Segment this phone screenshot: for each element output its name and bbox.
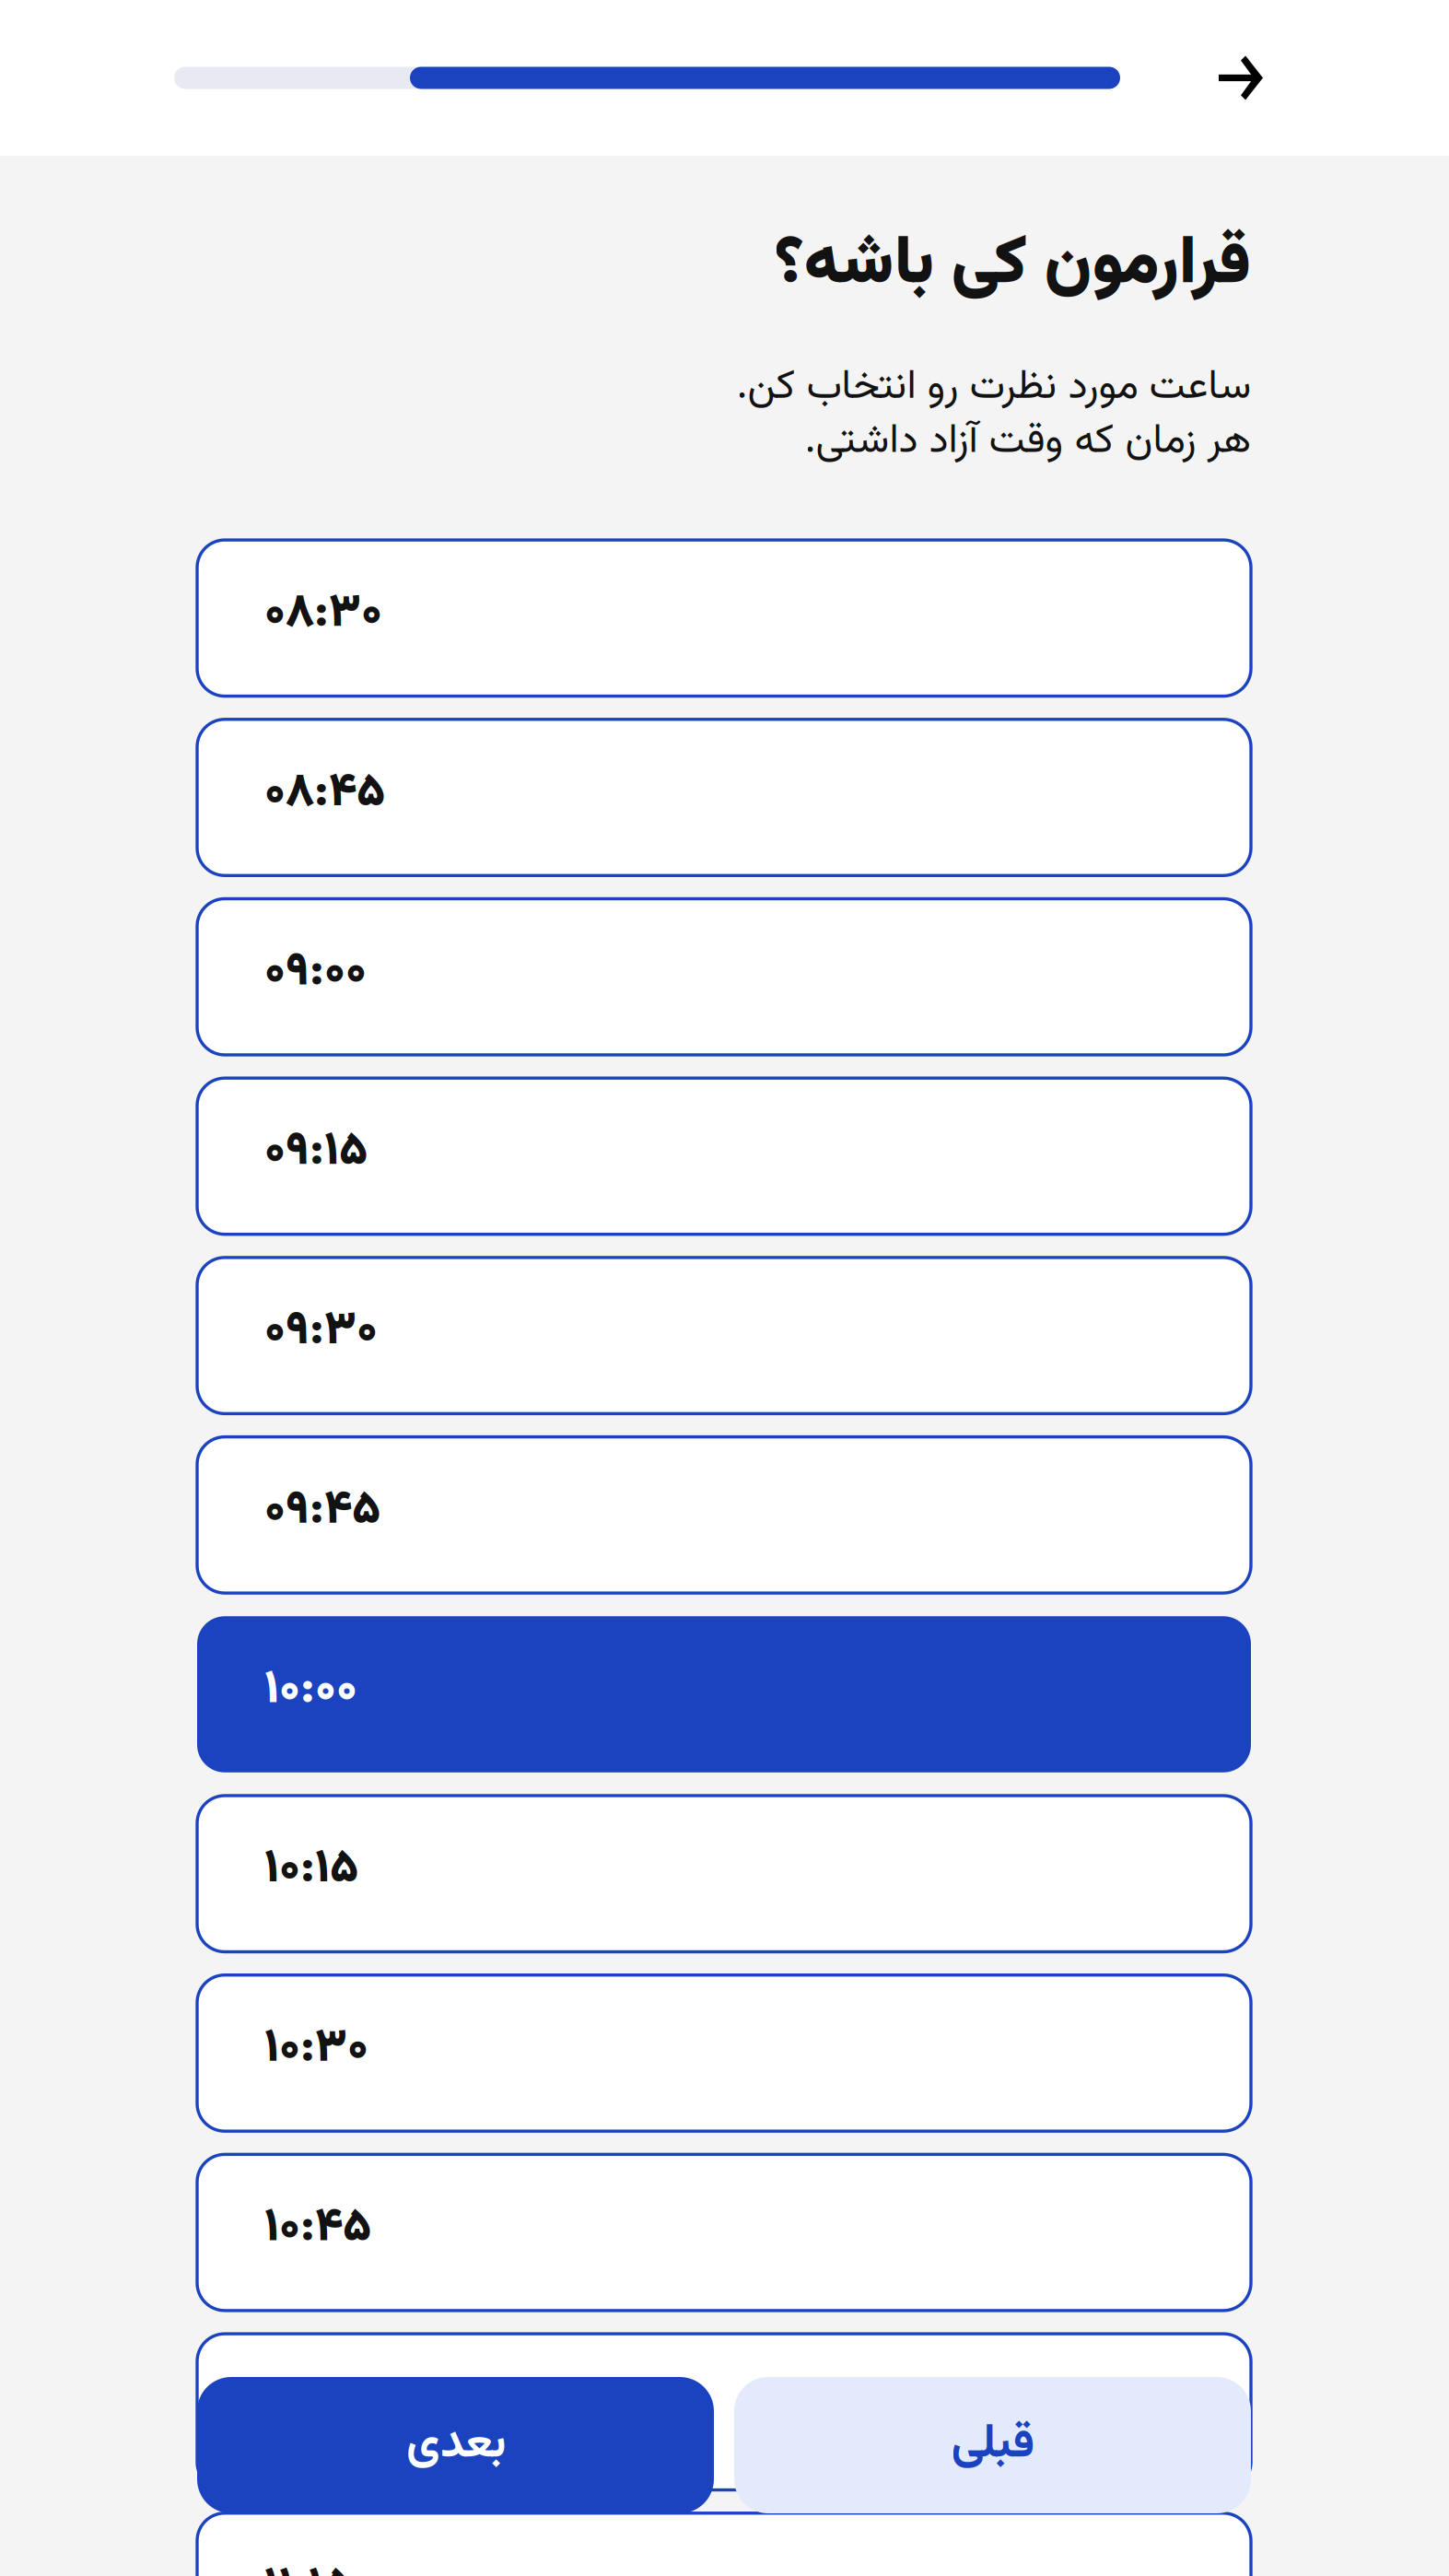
button[interactable]: ۱۰:۳۰	[197, 1975, 1251, 2131]
staticText: ۱۰:۰۰	[264, 1654, 357, 1727]
staticText: بعدی	[406, 2409, 505, 2482]
staticText: ۱۰:۴۵	[264, 2192, 371, 2265]
staticText: ساعت مورد نظرت رو انتخاب کن.	[736, 356, 1251, 420]
button[interactable]: ۱۱:۱۵	[197, 2513, 1251, 2576]
button[interactable]: ۱۰:۴۵	[197, 2154, 1251, 2311]
button[interactable]: ۰۹:۴۵	[197, 1437, 1251, 1593]
button[interactable]: Continue	[1219, 56, 1263, 100]
button[interactable]: ۰۸:۴۵	[197, 719, 1251, 876]
staticText: هر زمان که وقت آزاد داشتی.	[804, 410, 1251, 474]
staticText: ۰۸:۴۵	[264, 757, 385, 830]
button[interactable]: بعدی	[197, 2377, 714, 2513]
staticText: ۰۹:۰۰	[264, 937, 367, 1010]
staticText: ۰۹:۳۰	[264, 1295, 378, 1368]
button[interactable]: قبلی	[734, 2377, 1251, 2513]
staticText: ۱۱:۰۰	[264, 2372, 351, 2445]
staticText: ۱۱:۱۵	[264, 2551, 352, 2576]
staticText: ۰۸:۳۰	[264, 578, 382, 651]
staticText: ۰۹:۱۵	[264, 1116, 368, 1189]
staticText: ۱۰:۱۵	[264, 1834, 358, 1906]
button[interactable]: ۰۸:۳۰	[197, 540, 1251, 696]
button[interactable]: ۱۰:۱۵	[197, 1796, 1251, 1952]
staticText: قبلی	[951, 2409, 1034, 2482]
staticText: ۰۹:۴۵	[264, 1475, 380, 1548]
button[interactable]: ۰۹:۱۵	[197, 1078, 1251, 1234]
button[interactable]: ۰۹:۳۰	[197, 1258, 1251, 1414]
button[interactable]: ۰۹:۰۰	[197, 899, 1251, 1055]
button[interactable]: ۱۱:۰۰	[197, 2334, 1251, 2490]
staticText: ۱۰:۳۰	[264, 2013, 368, 2086]
button[interactable]: ۱۰:۰۰	[197, 1616, 1251, 1772]
staticText: قرارمون کی باشه؟	[774, 213, 1251, 318]
